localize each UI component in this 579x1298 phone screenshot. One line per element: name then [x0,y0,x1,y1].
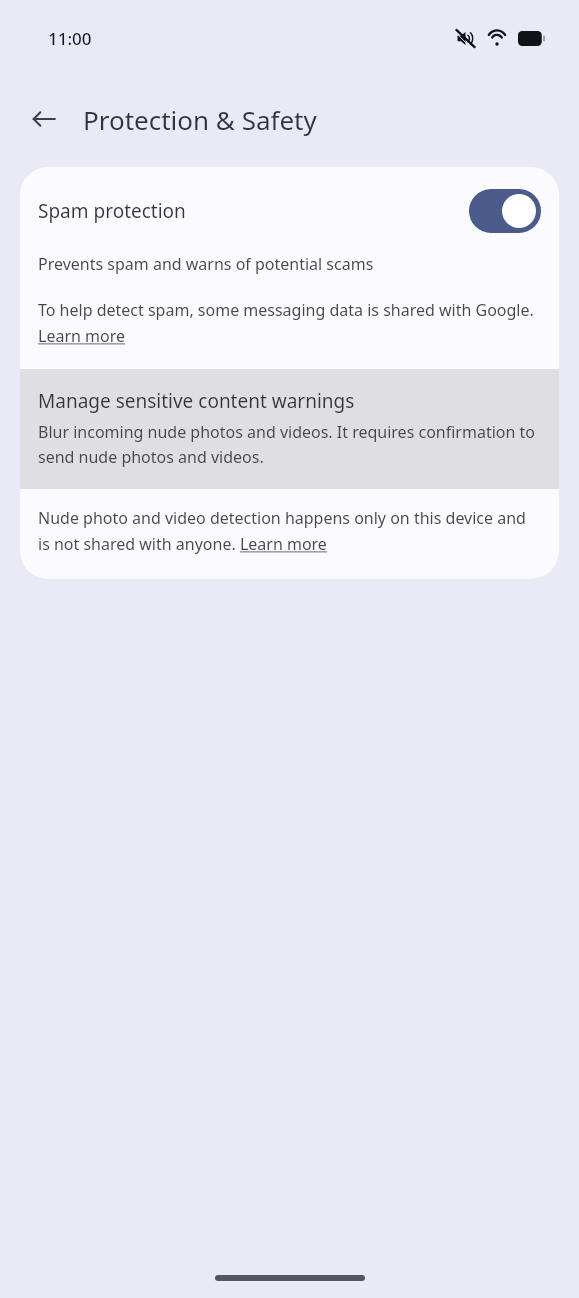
staticText: Nude photo and video detection happens o… [38,507,539,555]
staticText: Prevents spam and warns of potential sca… [38,253,374,275]
button[interactable]: Manage sensitive content warnings [20,369,559,489]
button[interactable]: Spam protection toggle [469,189,541,233]
staticText: Blur incoming nude photos and videos. It… [38,421,537,467]
staticText: To help detect spam, some messaging data… [38,299,543,347]
button[interactable]: Spam protection [20,167,559,369]
staticText: Spam protection [38,198,469,224]
button[interactable]: Back [20,95,68,143]
staticText: Manage sensitive content warnings [38,388,355,414]
staticText: 11:00 [48,27,92,50]
staticText: Protection & Safety [83,102,317,137]
